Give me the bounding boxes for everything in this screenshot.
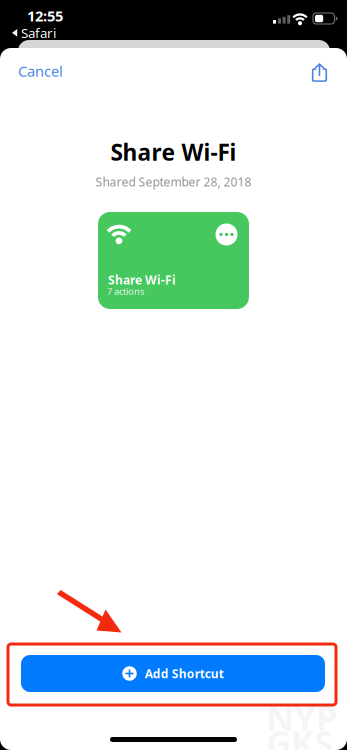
staticText: Cancel	[18, 61, 63, 81]
staticText: 7 actions	[107, 285, 144, 297]
staticText: NYP	[266, 694, 338, 740]
button[interactable]: Add Shortcut	[21, 655, 325, 692]
staticText: GKS	[266, 719, 333, 750]
staticText: Add Shortcut	[145, 665, 224, 681]
button[interactable]: Share	[295, 53, 347, 90]
staticText: 12:55	[27, 6, 63, 25]
staticText: Shared September 28, 2018	[95, 174, 251, 190]
staticText: Share Wi-Fi	[108, 272, 176, 288]
button[interactable]: Share Wi-Fi	[98, 212, 249, 309]
staticText: Safari	[21, 24, 56, 42]
button[interactable]: Cancel	[0, 50, 79, 94]
staticText: Share Wi-Fi	[110, 137, 236, 167]
